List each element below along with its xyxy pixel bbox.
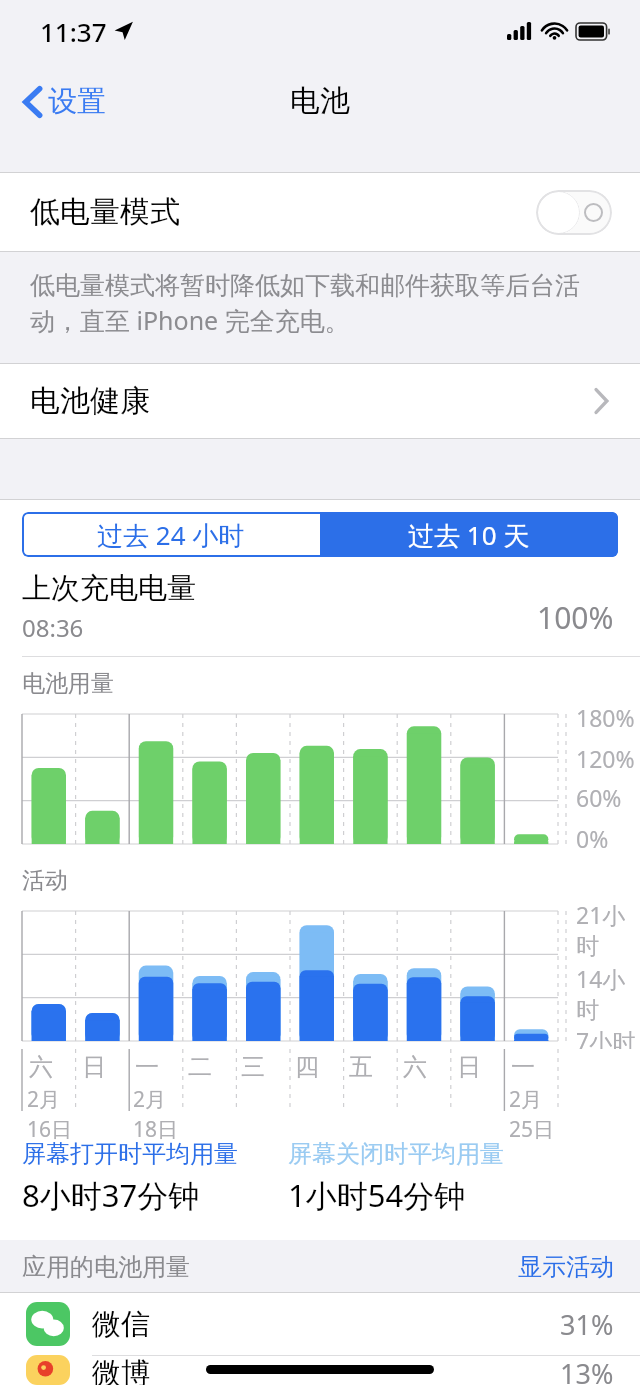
staticText: 2月18日 <box>133 1085 181 1144</box>
staticText: 低电量模式将暂时降低如下载和邮件获取等后台活动，直至 iPhone 完全充电。 <box>30 270 606 337</box>
button[interactable]: 微博 <box>0 1355 640 1385</box>
button[interactable]: 微信 <box>0 1293 640 1355</box>
staticText: 2月16日 <box>27 1085 75 1144</box>
staticText: 31% <box>560 1306 614 1343</box>
staticText: 四 <box>295 1052 319 1082</box>
staticText: 21小时 <box>576 899 640 961</box>
staticText: 2月25日 <box>509 1085 558 1144</box>
staticText: 微信 <box>92 1306 150 1343</box>
button[interactable]: 低电量模式开关 <box>536 190 612 235</box>
staticText: 100% <box>537 597 614 638</box>
staticText: 14小时 <box>576 963 640 1025</box>
staticText: 低电量模式 <box>30 193 180 231</box>
staticText: 8小时37分钟 <box>22 1174 200 1216</box>
staticText: 一 <box>511 1052 535 1082</box>
staticText: 一 <box>135 1052 159 1082</box>
staticText: 120% <box>576 743 635 774</box>
staticText: 08:36 <box>22 611 84 644</box>
staticText: 设置 <box>48 83 106 120</box>
staticText: 微博 <box>92 1355 150 1385</box>
staticText: 7小时 <box>576 1025 636 1049</box>
staticText: 五 <box>349 1052 373 1082</box>
staticText: 13% <box>560 1355 614 1385</box>
button[interactable]: 低电量模式 <box>0 172 640 252</box>
button[interactable]: 设置 <box>18 77 112 126</box>
button[interactable]: 过去 10 天 <box>320 512 618 557</box>
staticText: 60% <box>576 782 622 813</box>
staticText: 六 <box>29 1052 53 1082</box>
staticText: 应用的电池用量 <box>22 1252 190 1282</box>
staticText: 屏幕打开时平均用量 <box>22 1139 238 1169</box>
staticText: 180% <box>576 702 635 733</box>
staticText: 活动 <box>22 866 68 895</box>
staticText: 1小时54分钟 <box>288 1174 466 1216</box>
staticText: 三 <box>241 1052 265 1082</box>
staticText: 上次充电电量 <box>22 570 196 607</box>
button[interactable]: 显示活动 <box>518 1252 614 1282</box>
staticText: 0% <box>576 823 609 854</box>
staticText: 二 <box>188 1052 212 1082</box>
staticText: 过去 24 小时 <box>97 517 245 553</box>
staticText: 电池用量 <box>22 669 114 698</box>
staticText: 电池 <box>290 82 350 120</box>
button[interactable]: 电池健康 <box>0 363 640 439</box>
staticText: 过去 10 天 <box>408 517 530 553</box>
staticText: 日 <box>82 1052 106 1082</box>
staticText: 六 <box>403 1052 427 1082</box>
staticText: 显示活动 <box>518 1252 614 1282</box>
staticText: 屏幕关闭时平均用量 <box>288 1139 504 1169</box>
staticText: 电池健康 <box>30 382 150 420</box>
staticText: 日 <box>457 1052 481 1082</box>
button[interactable]: 过去 24 小时 <box>22 512 320 557</box>
staticText: 11:37 <box>40 14 107 49</box>
